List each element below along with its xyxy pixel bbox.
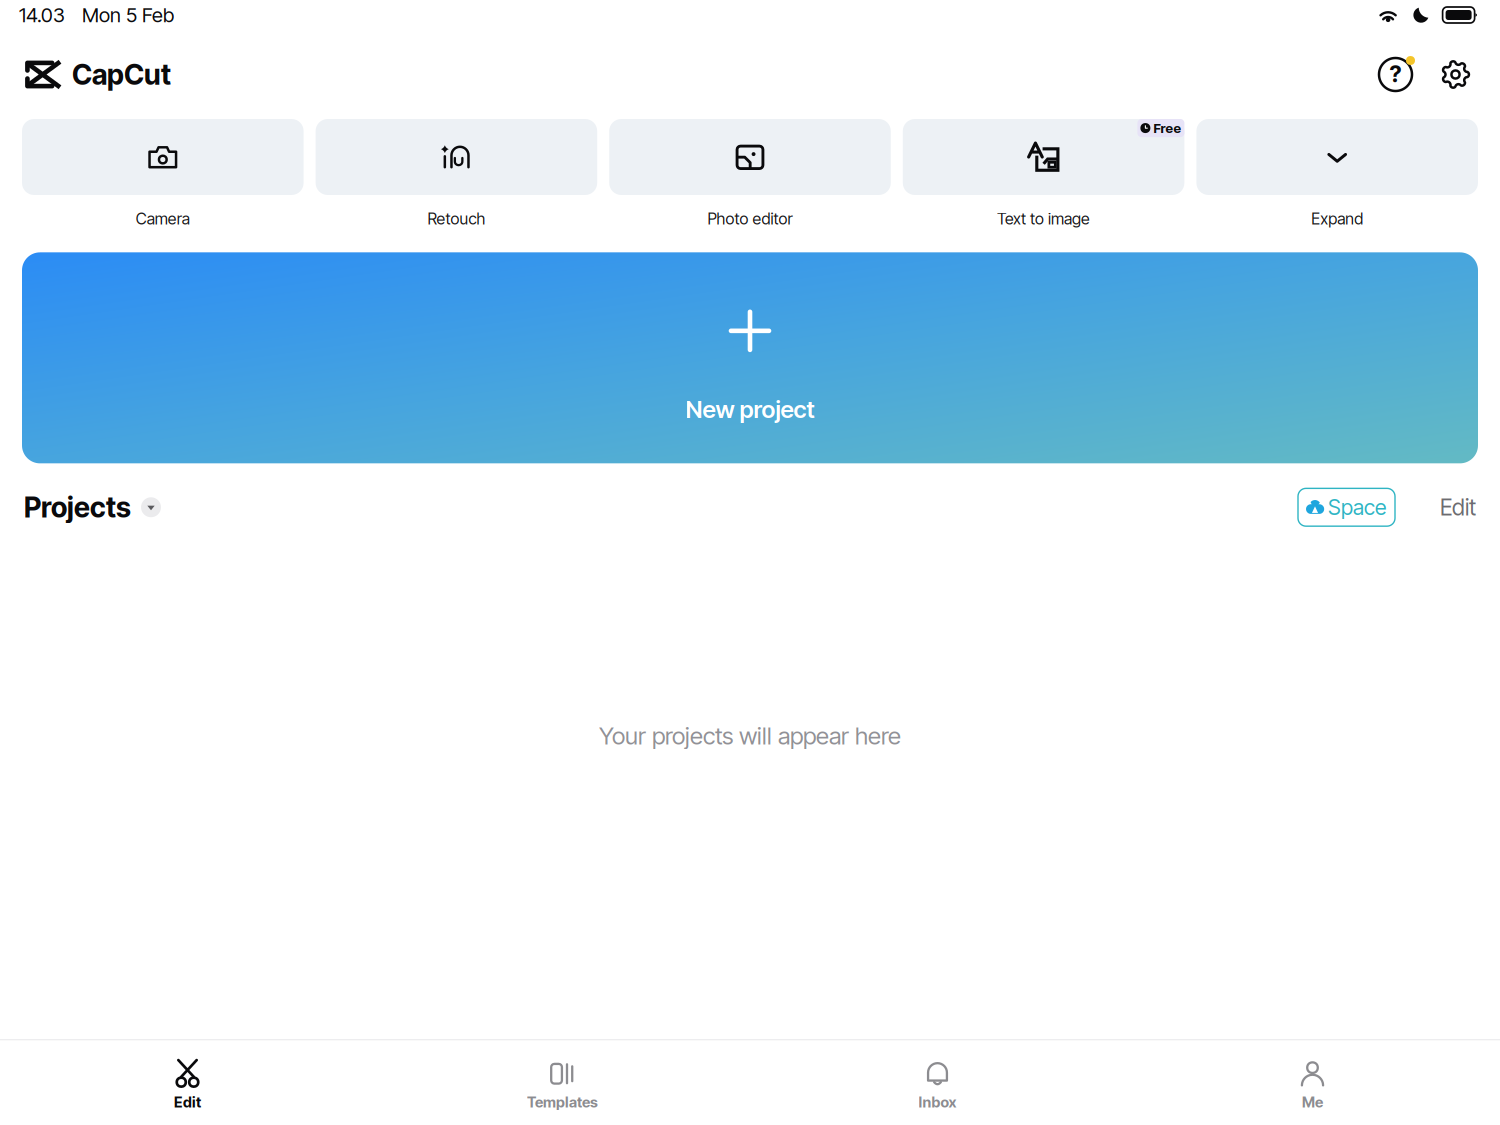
staticText: Mon 5 Feb — [82, 3, 174, 27]
button[interactable]: Space — [1298, 488, 1395, 526]
button[interactable]: Inbox — [750, 1040, 1125, 1125]
button[interactable]: Free — [903, 119, 1184, 228]
button[interactable]: Edit — [1395, 494, 1476, 521]
button[interactable]: Me — [1125, 1040, 1500, 1125]
staticText: CapCut — [72, 58, 171, 91]
staticText: Retouch — [427, 209, 485, 228]
staticText: Text to image — [997, 209, 1090, 228]
staticText: Edit — [1440, 494, 1476, 521]
button[interactable]: Edit — [0, 1040, 375, 1125]
staticText: 14.03 — [19, 3, 65, 27]
staticText: Me — [1302, 1093, 1323, 1111]
staticText: Camera — [136, 209, 190, 228]
staticText: ? — [1389, 60, 1401, 88]
staticText: Templates — [527, 1093, 598, 1111]
button[interactable]: Templates — [375, 1040, 750, 1125]
button[interactable]: Expand — [1196, 119, 1478, 228]
staticText: Photo editor — [707, 209, 792, 228]
button[interactable]: Camera — [22, 119, 304, 228]
button[interactable]: Settings — [1439, 58, 1472, 91]
button[interactable]: Retouch — [316, 119, 597, 228]
button[interactable]: Help — [1379, 58, 1412, 91]
staticText: Free — [1153, 120, 1181, 136]
staticText: Space — [1328, 494, 1386, 520]
staticText: Inbox — [918, 1093, 956, 1111]
button[interactable]: New project — [22, 252, 1478, 463]
staticText: Your projects will appear here — [599, 721, 901, 750]
button[interactable]: Sort projects — [141, 497, 161, 517]
staticText: Projects — [24, 490, 131, 524]
button[interactable]: Photo editor — [609, 119, 891, 228]
staticText: New project — [685, 395, 814, 424]
staticText: Expand — [1311, 209, 1363, 228]
staticText: Edit — [174, 1093, 201, 1111]
